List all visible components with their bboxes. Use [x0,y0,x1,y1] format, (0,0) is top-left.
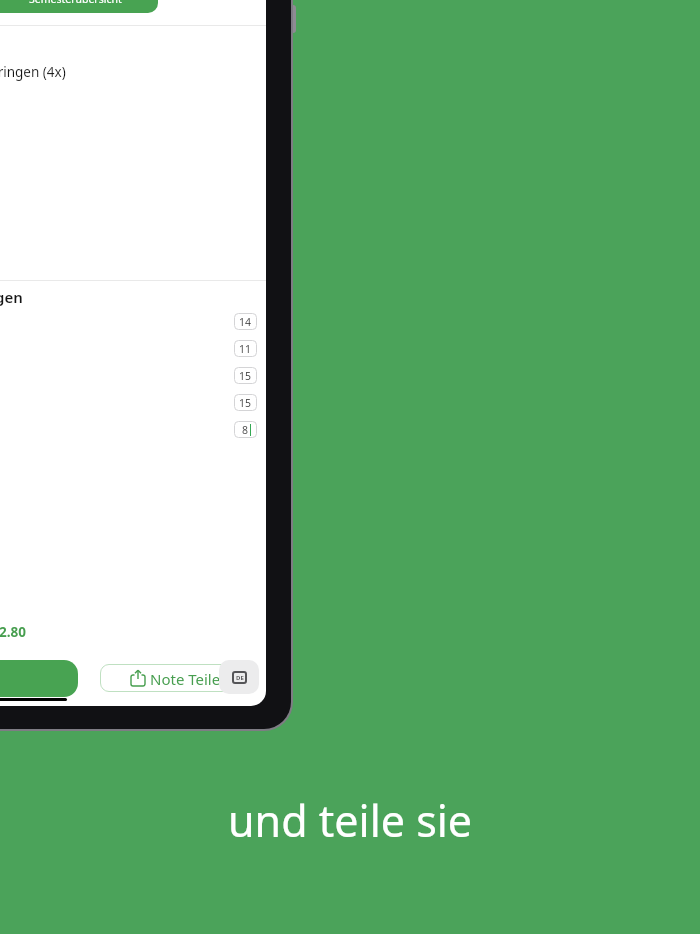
staticText: und teile sie [228,791,473,850]
staticText: 8 [242,423,249,437]
button[interactable]: 15 [234,367,257,384]
button[interactable]: 11 [234,340,257,357]
button[interactable]: DE [219,660,259,694]
button[interactable]: Note Teilen [100,664,256,692]
staticText: 14 [239,315,252,329]
staticText: 11 [239,342,252,356]
staticText: Note Teilen [150,669,230,689]
staticText: 15 [239,396,252,410]
button[interactable] [0,0,158,13]
button[interactable]: 15 [234,394,257,411]
staticText: DE [236,674,244,682]
staticText: 2.80 [0,623,26,641]
staticText: Einbringen (4x) [0,63,66,81]
staticText: 15 [239,369,252,383]
button[interactable]: 14 [234,313,257,330]
staticText: Semesterübersicht [29,0,122,6]
button[interactable] [0,660,78,697]
button[interactable]: 8 [234,421,257,438]
staticText: Prüfungen [0,287,23,307]
